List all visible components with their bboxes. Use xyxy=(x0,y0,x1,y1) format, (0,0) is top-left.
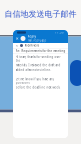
staticText: Let me know if you have any questions xyxy=(15,77,53,84)
staticText: 自信地发送电子邮件 xyxy=(4,9,76,19)
staticText: 11:30 xyxy=(55,31,64,34)
staticText: added a few notes inline. xyxy=(15,68,51,72)
staticText: Reply xyxy=(27,35,35,38)
staticText: materials. I reviewed the draft and xyxy=(15,63,60,67)
staticText: To xyxy=(15,44,18,47)
staticText: Hi team, thanks for sending over the xyxy=(15,55,60,62)
staticText: before the deadline next week. xyxy=(15,86,60,89)
staticText: Alex Rivera xyxy=(24,44,38,47)
staticText: ✕ xyxy=(15,36,18,41)
staticText: mail.reply.app xyxy=(27,39,46,42)
staticText: Re: Requirements for the meeting xyxy=(15,49,65,53)
